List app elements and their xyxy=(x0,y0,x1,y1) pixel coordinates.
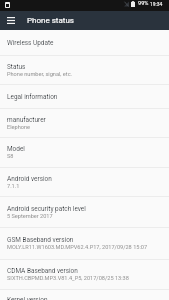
button[interactable]: CDMA Baseband version xyxy=(0,260,169,289)
button[interactable]: Open navigation menu xyxy=(0,11,22,30)
staticText: 19:34 xyxy=(150,1,163,7)
staticText: Elephone xyxy=(7,124,30,131)
button[interactable]: Kernel version xyxy=(0,290,169,300)
button[interactable]: Android version xyxy=(0,168,169,196)
staticText: manufacturer xyxy=(7,116,46,124)
staticText: Phone status xyxy=(27,16,74,25)
staticText: Android version xyxy=(7,175,52,183)
staticText: Phone number, signal, etc. xyxy=(7,71,73,78)
staticText: SIXTH.CBPMD.MP3.V81.4_P5, 2017/08/25 13:… xyxy=(7,275,129,282)
staticText: Wireless Update xyxy=(7,39,54,47)
button[interactable]: manufacturer xyxy=(0,109,169,137)
staticText: Android security patch level xyxy=(7,205,86,213)
staticText: S8 xyxy=(7,153,14,160)
button[interactable]: Android security patch level xyxy=(0,197,169,227)
button[interactable]: Legal information xyxy=(0,85,169,108)
staticText: CDMA Baseband version xyxy=(7,267,78,275)
staticText: Legal information xyxy=(7,93,58,101)
staticText: Model xyxy=(7,145,25,153)
staticText: MOLY.LR11.W1603.MD.MPV62.4.P17, 2017/09/… xyxy=(7,244,148,251)
staticText: 7.1.1 xyxy=(7,183,20,190)
staticText: Kernel version xyxy=(7,296,48,300)
staticText: Status xyxy=(7,63,26,71)
button[interactable]: Wireless Update xyxy=(0,30,169,55)
button[interactable]: Status xyxy=(0,56,169,84)
button[interactable]: Model xyxy=(0,138,169,167)
staticText: GSM Baseband version xyxy=(7,236,74,244)
staticText: 5 September 2017 xyxy=(7,213,53,220)
button[interactable]: GSM Baseband version xyxy=(0,228,169,259)
staticText: 99% xyxy=(138,0,149,7)
